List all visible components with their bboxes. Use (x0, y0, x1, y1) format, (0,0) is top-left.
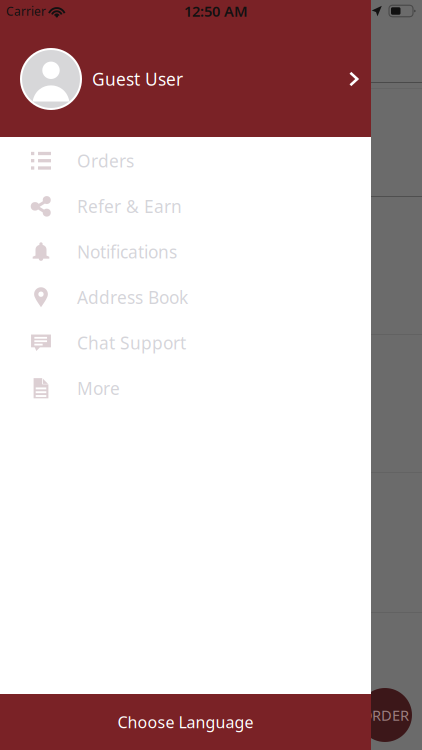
staticText: Orders (77, 149, 134, 172)
button[interactable]: Choose Language (0, 694, 371, 750)
staticText: Notifications (77, 240, 177, 263)
button[interactable]: More (0, 365, 371, 411)
button[interactable]: Chat Support (0, 320, 371, 365)
staticText: Choose Language (117, 711, 253, 733)
button[interactable]: Address Book (0, 274, 371, 320)
staticText: Refer & Earn (77, 195, 182, 218)
staticText: Guest User (92, 67, 183, 90)
button[interactable]: Guest User (0, 0, 371, 137)
staticText: More (77, 377, 120, 400)
button[interactable]: Orders (0, 138, 371, 183)
staticText: Carrier (6, 3, 46, 19)
button[interactable]: Refer & Earn (0, 183, 371, 229)
staticText: Chat Support (77, 331, 186, 354)
staticText: Address Book (77, 286, 188, 309)
button[interactable]: ORDER (358, 688, 412, 742)
button[interactable]: Notifications (0, 229, 371, 274)
staticText: ORDER (361, 705, 409, 725)
staticText: 12:50 AM (184, 1, 248, 21)
